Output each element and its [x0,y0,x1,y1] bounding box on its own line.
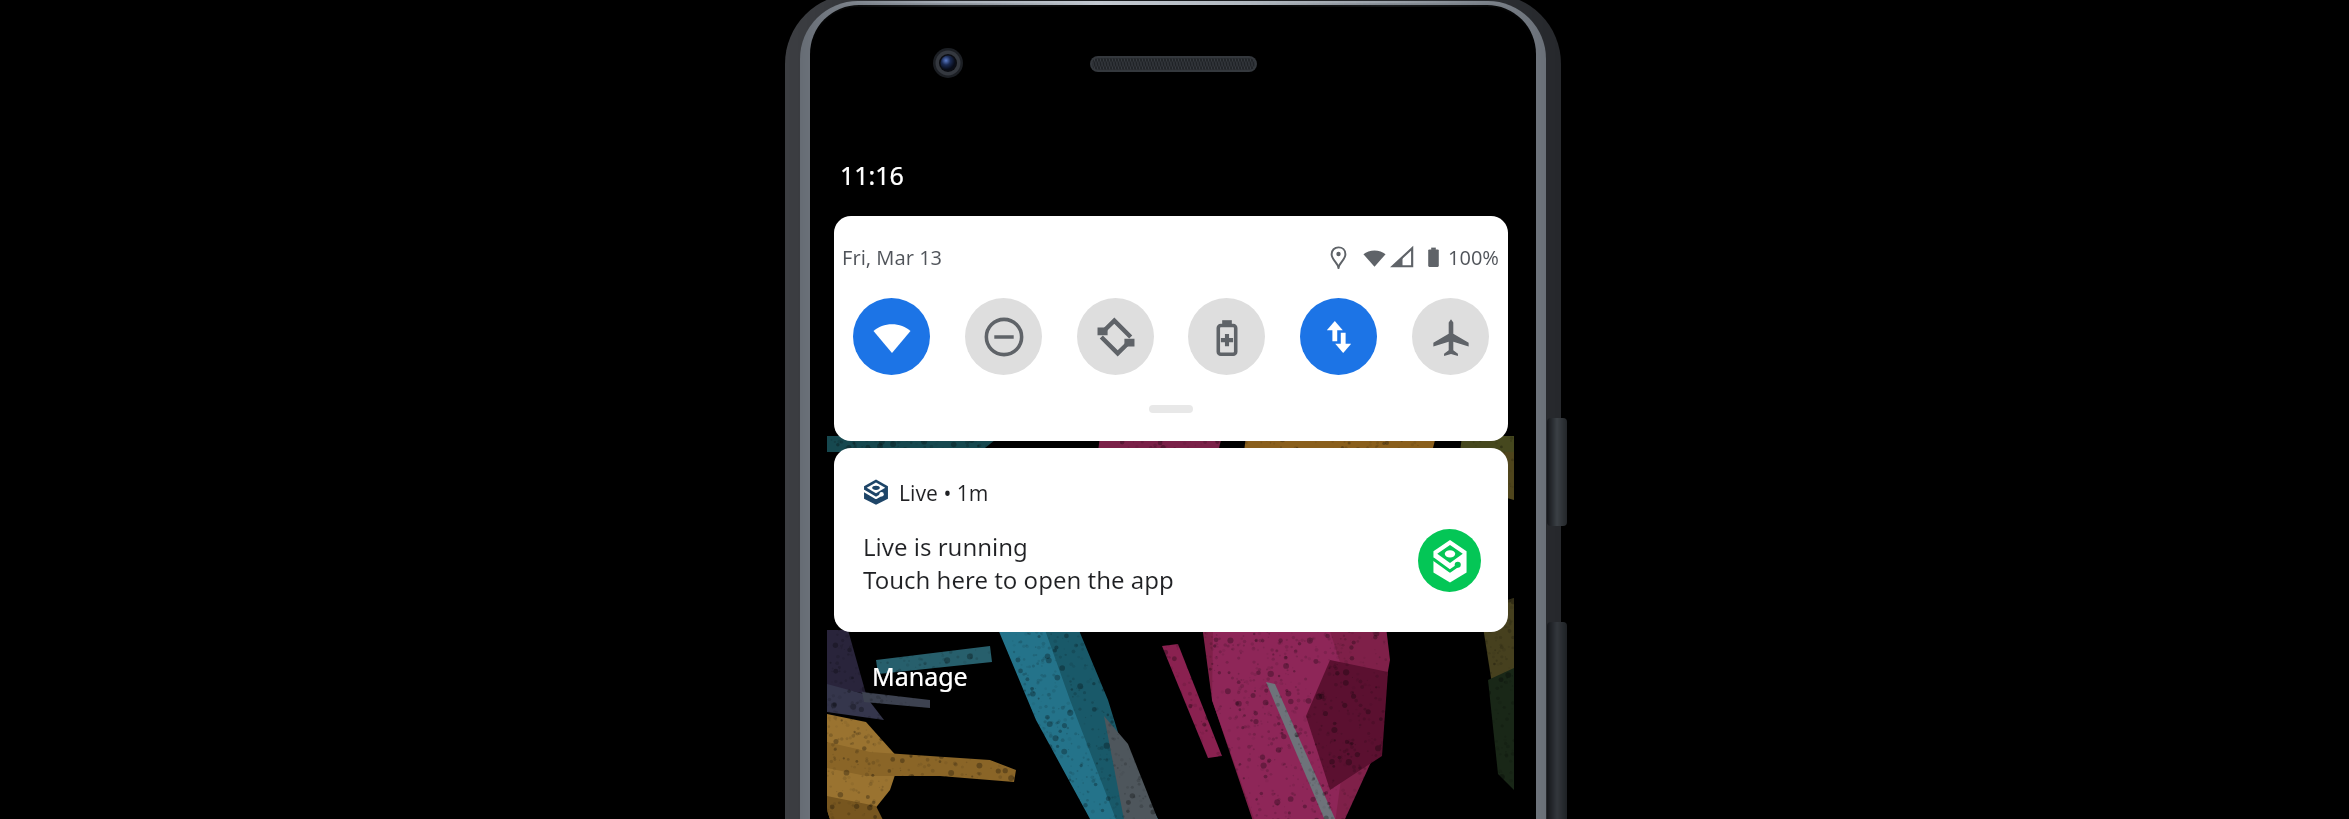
button[interactable]: Do not disturb [965,298,1042,375]
staticText: Touch here to open the app [863,563,1174,596]
staticText: Live • 1m [899,479,989,505]
button[interactable]: Expand quick settings [1149,405,1193,413]
button[interactable]: Manage [872,659,968,693]
button[interactable]: Live app [1418,529,1481,592]
button[interactable]: Wi-Fi [853,298,930,375]
button[interactable]: Mobile data [1300,298,1377,375]
staticText: Fri, Mar 13 [842,244,943,271]
button[interactable]: Airplane mode [1412,298,1489,375]
button[interactable]: Battery saver [1188,298,1265,375]
staticText: 100% [1448,244,1499,271]
button[interactable]: Auto rotate [1077,298,1154,375]
staticText: Manage [872,659,968,693]
staticText: 11:16 [840,158,904,192]
staticText: Live is running [863,530,1028,563]
button[interactable]: Live • 1m [834,448,1508,632]
